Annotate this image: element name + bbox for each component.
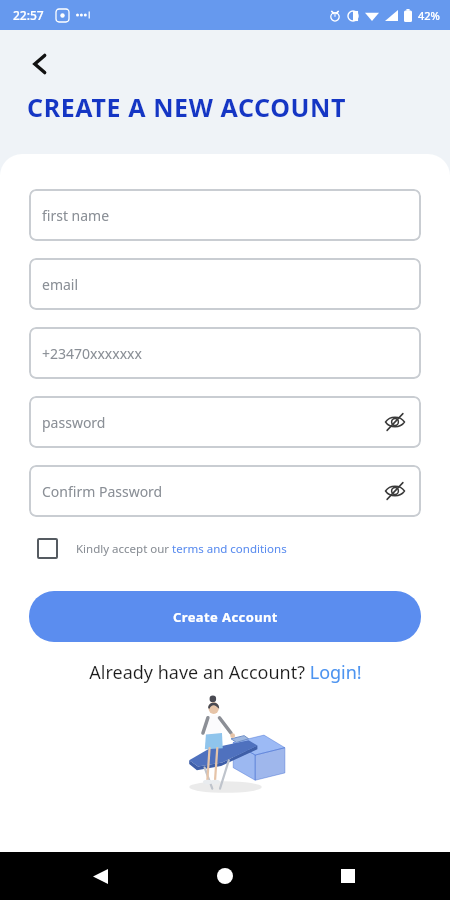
- button[interactable]: Back: [78, 854, 122, 898]
- button[interactable]: Kindly accept our terms and conditions: [29, 538, 421, 559]
- button[interactable]: Toggle password visibility: [380, 407, 410, 437]
- staticText: +23470xxxxxxx: [42, 344, 142, 363]
- staticText: email: [42, 275, 79, 294]
- staticText: Create Account: [173, 608, 278, 626]
- button[interactable]: Confirm Password: [29, 465, 421, 517]
- button[interactable]: Home: [203, 854, 247, 898]
- button[interactable]: first name: [29, 189, 421, 241]
- button[interactable]: Toggle password visibility: [380, 476, 410, 506]
- staticText: first name: [42, 206, 110, 225]
- staticText: Confirm Password: [42, 482, 163, 501]
- staticText: password: [42, 413, 106, 432]
- staticText: 22:57: [13, 7, 44, 23]
- button[interactable]: Recent apps: [326, 854, 370, 898]
- staticText: Already have an Account? Login!: [89, 660, 362, 685]
- button[interactable]: Already have an Account? Login!: [29, 660, 421, 685]
- staticText: Kindly accept our terms and conditions: [76, 541, 287, 557]
- staticText: 42%: [418, 8, 440, 23]
- button[interactable]: +23470xxxxxxx: [29, 327, 421, 379]
- button[interactable]: password: [29, 396, 421, 448]
- button[interactable]: email: [29, 258, 421, 310]
- staticText: CREATE A NEW ACCOUNT: [27, 90, 347, 124]
- button[interactable]: Create Account: [29, 591, 421, 642]
- button[interactable]: Back: [18, 42, 62, 86]
